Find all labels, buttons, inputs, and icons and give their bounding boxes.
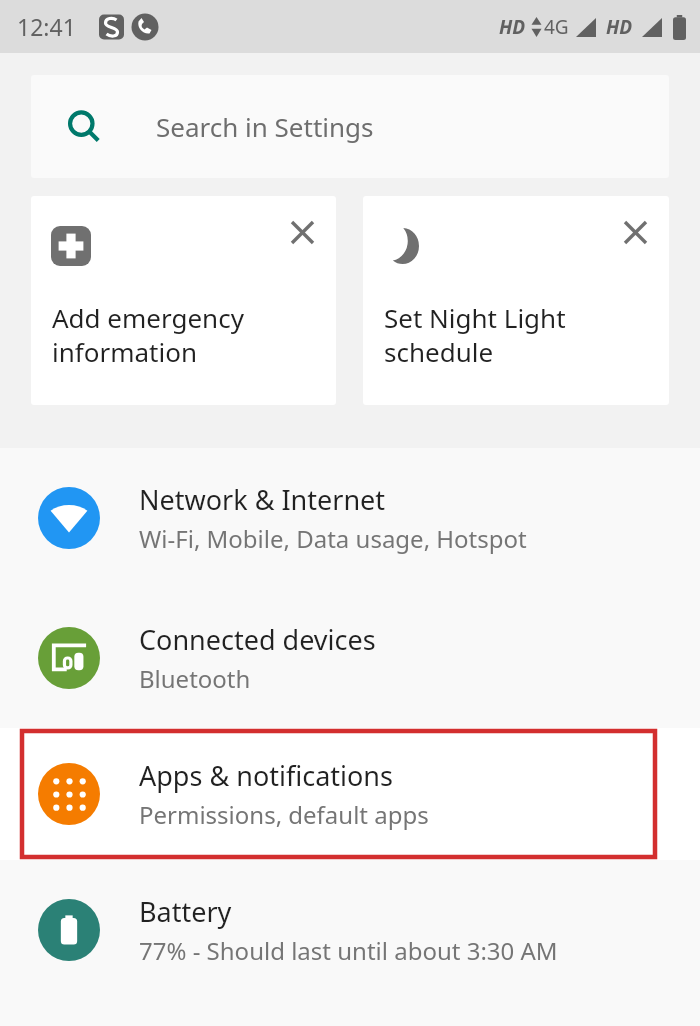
staticText: HD [606, 14, 633, 40]
staticText: 77% - Should last until about 3:30 AM [139, 934, 558, 967]
staticText: 4G [544, 14, 569, 40]
staticText: Add emergency information [52, 300, 244, 369]
staticText: 12:41 [17, 11, 76, 42]
button[interactable]: Apps & notifications [0, 728, 700, 860]
button[interactable]: Dismiss [280, 210, 324, 254]
button[interactable]: Dismiss [363, 196, 669, 405]
staticText: Battery [139, 893, 232, 930]
button[interactable]: Network & Internet [0, 448, 700, 588]
button[interactable]: Dismiss [613, 210, 657, 254]
staticText: Bluetooth [139, 662, 251, 695]
staticText: HD [499, 14, 526, 40]
staticText: Connected devices [139, 621, 376, 658]
button[interactable]: Dismiss [31, 196, 336, 405]
staticText: Search in Settings [156, 109, 374, 144]
staticText: Wi-Fi, Mobile, Data usage, Hotspot [139, 522, 527, 555]
staticText: Network & Internet [139, 481, 386, 518]
staticText: Permissions, default apps [139, 798, 429, 831]
button[interactable]: Battery [0, 860, 700, 1000]
staticText: Set Night Light schedule [384, 300, 566, 369]
button[interactable]: Search in Settings [31, 75, 669, 178]
staticText: Apps & notifications [139, 757, 393, 794]
button[interactable]: Connected devices [0, 588, 700, 728]
